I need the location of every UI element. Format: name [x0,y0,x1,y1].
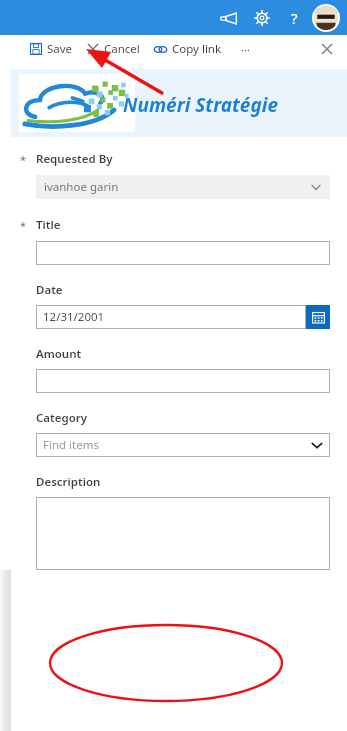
button[interactable]: Account [309,1,343,35]
button[interactable]: Copy link [152,36,224,62]
staticText: ivanhoe garin [44,179,310,195]
button[interactable] [36,369,330,393]
staticText: Title [36,217,61,233]
staticText: Category [36,410,88,426]
staticText: * [20,218,27,233]
staticText: Date [36,282,63,298]
button[interactable] [36,241,330,265]
button[interactable]: Save [28,36,75,62]
staticText: Copy link [172,41,222,57]
button[interactable]: Close [315,37,339,61]
staticText: ··· [241,42,250,57]
staticText: ? [291,8,298,28]
button[interactable]: Announcements [211,1,245,35]
button[interactable] [36,497,330,570]
button[interactable]: More options [234,36,256,62]
button[interactable]: Cancel [85,36,142,62]
button[interactable]: ivanhoe garin [36,175,330,199]
button[interactable]: Help [279,3,309,33]
staticText: Requested By [36,151,113,167]
button[interactable]: Settings [245,1,279,35]
staticText: * [20,152,27,167]
staticText: Find items [43,437,310,453]
button[interactable]: Pick a date [306,305,330,329]
staticText: Cancel [104,41,140,57]
staticText: Amount [36,346,82,362]
staticText: Save [47,41,73,57]
staticText: Description [36,474,101,490]
staticText: Numéri Stratégie [123,92,279,118]
staticText: 12/31/2001 [43,309,105,325]
button[interactable]: 12/31/2001 [36,305,306,329]
button[interactable]: Find items [36,433,330,457]
